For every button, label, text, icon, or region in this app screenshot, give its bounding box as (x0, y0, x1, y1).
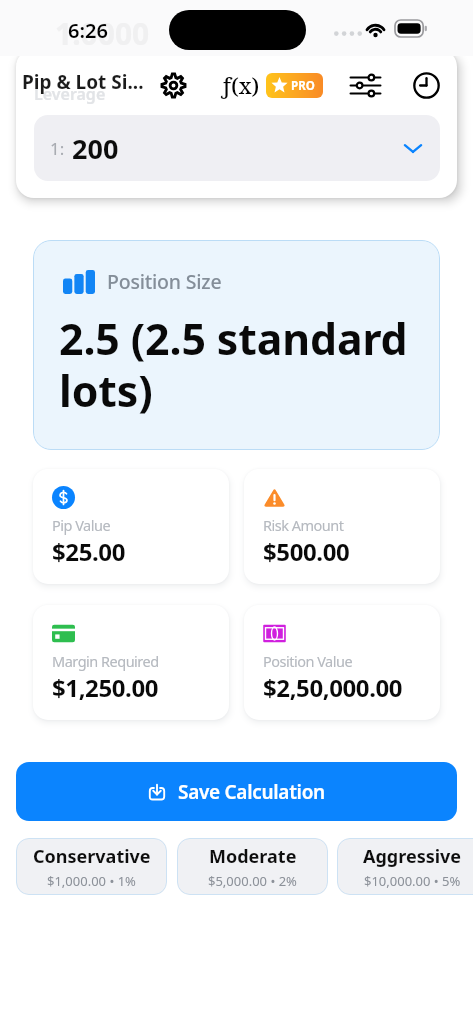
staticText: Conservative (33, 844, 151, 869)
staticText: Moderate (209, 844, 297, 869)
staticText: Position Value (263, 651, 353, 671)
staticText: 2.5 (2.5 standard lots) (59, 309, 418, 419)
staticText: Margin Required (52, 651, 159, 671)
button[interactable]: Margin Required (33, 605, 229, 720)
button[interactable]: Save Calculation (16, 762, 457, 821)
staticText: 6:26 (68, 17, 108, 44)
staticText: PRO (291, 78, 315, 94)
button[interactable]: Risk Amount (244, 469, 440, 584)
button[interactable]: 1: (34, 115, 440, 181)
staticText: Risk Amount (263, 515, 344, 535)
staticText: $1,250.00 (52, 671, 159, 704)
staticText: Pip & Lot Si... (22, 69, 144, 95)
staticText: $10,000.00 • 5% (364, 872, 461, 890)
staticText: $5,000.00 • 2% (208, 872, 297, 890)
staticText: Leverage (34, 83, 106, 105)
staticText: $1,000.00 • 1% (47, 872, 136, 890)
staticText: ƒ(x) (221, 71, 260, 100)
staticText: 1: (50, 137, 65, 160)
staticText: $25.00 (52, 535, 125, 568)
button[interactable]: Aggressive (337, 838, 473, 895)
staticText: $500.00 (263, 535, 350, 568)
button[interactable]: Settings (156, 62, 190, 109)
staticText: Position Size (107, 268, 222, 295)
button[interactable]: Moderate (177, 838, 328, 895)
staticText: 1.0000 (55, 13, 150, 54)
button[interactable]: Pip Value (33, 469, 229, 584)
staticText: $2,50,000.00 (263, 671, 403, 704)
button[interactable]: Position Value (244, 605, 440, 720)
button[interactable]: Filters (343, 62, 387, 109)
button[interactable]: Formula Pro (221, 62, 323, 109)
button[interactable]: History (404, 62, 448, 109)
staticText: 200 (72, 130, 119, 167)
staticText: Save Calculation (178, 779, 325, 805)
staticText: Pip Value (52, 515, 111, 535)
button[interactable]: Conservative (16, 838, 167, 895)
staticText: Aggressive (363, 844, 462, 869)
